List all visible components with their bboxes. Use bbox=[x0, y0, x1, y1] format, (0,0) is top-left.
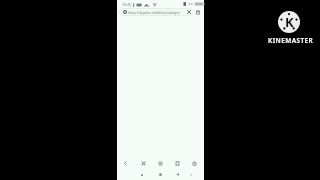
button[interactable]: https://objetos.mdld.bio/codeges bbox=[119, 8, 193, 16]
staticText: https://objetos.mdld.bio/codeges bbox=[128, 10, 183, 14]
button[interactable]: Recents bbox=[137, 170, 146, 179]
button[interactable]: Share bbox=[194, 8, 202, 16]
button[interactable]: Back bbox=[120, 158, 131, 169]
staticText: KINEMASTER bbox=[268, 36, 314, 45]
staticText: 10:45 bbox=[122, 2, 131, 7]
button[interactable]: Tabs bbox=[172, 158, 183, 169]
button[interactable]: Home bbox=[189, 158, 200, 169]
button[interactable]: Back bbox=[173, 170, 182, 179]
staticText: K bbox=[285, 13, 294, 31]
button[interactable]: Stop loading bbox=[185, 8, 193, 16]
button[interactable]: Menu bbox=[155, 158, 166, 169]
button[interactable]: Home bbox=[156, 170, 165, 179]
button[interactable]: Keyboard bbox=[186, 170, 195, 179]
button[interactable]: Stop loading bbox=[138, 158, 149, 169]
